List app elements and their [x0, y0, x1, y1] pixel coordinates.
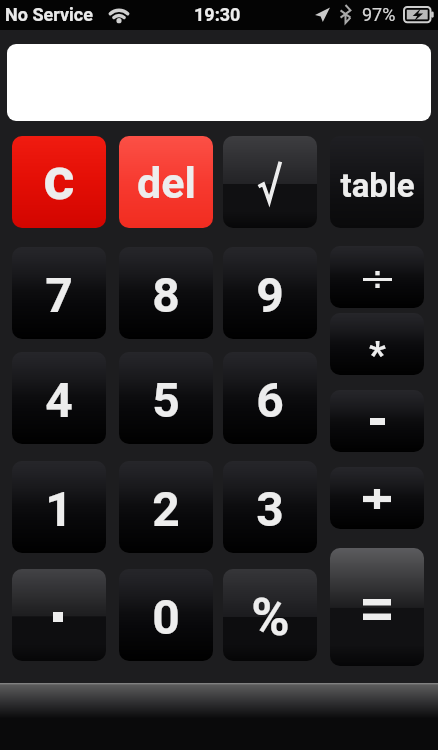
button[interactable]: 9: [223, 247, 317, 339]
staticText: 1: [45, 481, 73, 537]
button[interactable]: Equals: [330, 548, 424, 666]
staticText: 0: [152, 589, 180, 645]
staticText: *: [369, 333, 386, 375]
button[interactable]: 7: [12, 247, 106, 339]
staticText: table: [340, 166, 415, 205]
staticText: 4: [45, 372, 73, 428]
staticText: 97%: [362, 4, 396, 25]
staticText: %: [251, 587, 290, 648]
button[interactable]: Minus: [330, 390, 424, 452]
button[interactable]: 8: [119, 247, 213, 339]
button[interactable]: Divide: [330, 246, 424, 308]
button[interactable]: c: [12, 136, 106, 228]
staticText: No Service: [5, 4, 93, 25]
button[interactable]: table: [330, 136, 424, 228]
button[interactable]: Plus: [330, 467, 424, 529]
button[interactable]: 3: [223, 461, 317, 553]
staticText: 3: [256, 481, 284, 537]
button[interactable]: 5: [119, 352, 213, 444]
staticText: 9: [256, 267, 284, 323]
button[interactable]: Display: [7, 44, 431, 121]
button[interactable]: 6: [223, 352, 317, 444]
button[interactable]: 2: [119, 461, 213, 553]
staticText: 5: [152, 372, 180, 428]
button[interactable]: del: [119, 136, 213, 228]
staticText: del: [137, 158, 196, 208]
staticText: 6: [256, 372, 284, 428]
button[interactable]: %: [223, 569, 317, 661]
staticText: 2: [152, 481, 180, 537]
button[interactable]: Multiply: [330, 313, 424, 375]
button[interactable]: 4: [12, 352, 106, 444]
button[interactable]: Decimal point: [12, 569, 106, 661]
staticText: 19:30: [194, 4, 241, 25]
staticText: 7: [45, 267, 73, 323]
button[interactable]: 0: [119, 569, 213, 661]
button[interactable]: Square root: [223, 136, 317, 228]
staticText: c: [43, 143, 75, 213]
staticText: 8: [152, 267, 180, 323]
button[interactable]: 1: [12, 461, 106, 553]
